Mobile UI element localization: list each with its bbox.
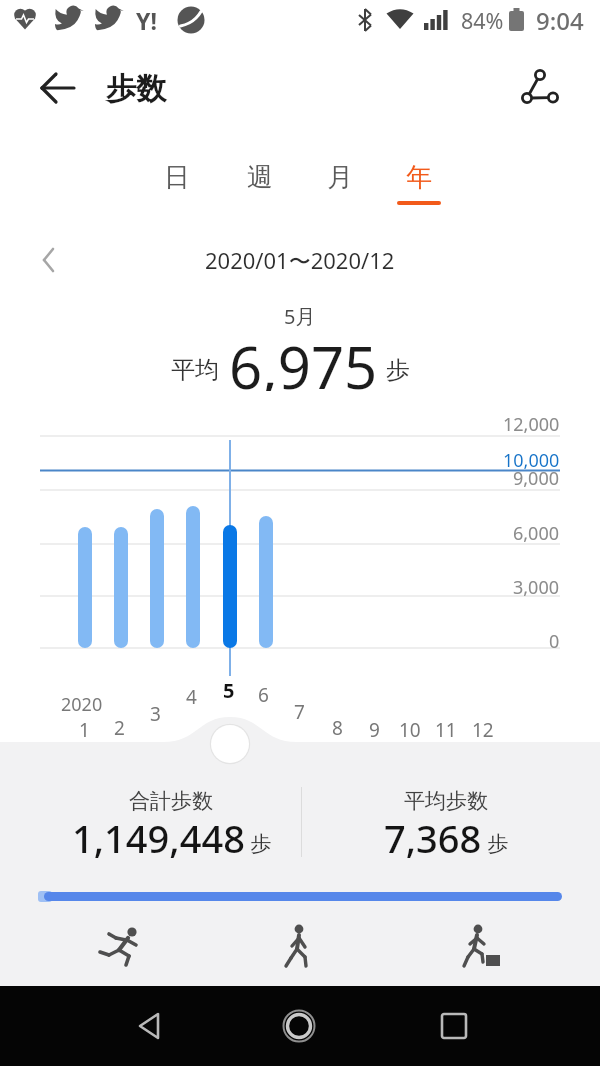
- staticText: 3: [150, 701, 161, 727]
- staticText: 9,000: [513, 466, 560, 491]
- staticText: 歩数: [106, 70, 166, 108]
- staticText: 9:04: [536, 4, 584, 37]
- staticText: 12,000: [503, 412, 560, 437]
- staticText: 7,368: [384, 812, 482, 862]
- staticText: 8: [332, 715, 343, 741]
- button[interactable]: [34, 70, 82, 110]
- staticText: 10: [399, 717, 421, 743]
- staticText: 週: [247, 161, 273, 194]
- button[interactable]: 年: [389, 155, 449, 199]
- staticText: 84%: [461, 6, 504, 35]
- button[interactable]: [96, 922, 146, 970]
- button[interactable]: [456, 922, 506, 970]
- button[interactable]: [424, 986, 484, 1066]
- staticText: 2: [114, 715, 125, 741]
- staticText: 4: [186, 684, 197, 710]
- staticText: 7: [294, 699, 305, 725]
- staticText: 10,000: [503, 448, 560, 473]
- staticText: 9: [369, 717, 380, 743]
- staticText: 6,000: [513, 521, 560, 546]
- staticText: 歩: [482, 829, 509, 858]
- staticText: 12: [472, 717, 494, 743]
- staticText: 1: [79, 717, 90, 743]
- button[interactable]: 月: [310, 155, 370, 199]
- staticText: 歩: [386, 355, 410, 385]
- staticText: 年: [406, 161, 432, 194]
- staticText: 平均: [171, 355, 219, 385]
- staticText: Y!: [136, 5, 157, 36]
- button[interactable]: 日: [147, 155, 207, 199]
- staticText: 5月: [284, 303, 316, 330]
- staticText: 平均歩数: [404, 788, 488, 814]
- button[interactable]: [274, 922, 324, 970]
- staticText: 月: [327, 161, 353, 194]
- staticText: 1,149,448: [72, 812, 245, 862]
- button[interactable]: [120, 986, 180, 1066]
- staticText: 日: [164, 161, 190, 194]
- staticText: 3,000: [513, 575, 560, 600]
- staticText: 2020: [61, 692, 103, 717]
- staticText: 6,975: [229, 327, 378, 391]
- staticText: 6: [258, 682, 269, 708]
- staticText: 0: [549, 629, 560, 654]
- button[interactable]: [514, 62, 566, 112]
- staticText: 合計歩数: [129, 788, 213, 814]
- staticText: 11: [435, 717, 457, 743]
- button[interactable]: [269, 986, 329, 1066]
- staticText: 歩: [245, 829, 272, 858]
- button[interactable]: [210, 725, 250, 765]
- staticText: 2020/01〜2020/12: [205, 245, 395, 275]
- staticText: 5: [223, 677, 235, 704]
- button[interactable]: 週: [230, 155, 290, 199]
- button[interactable]: [30, 242, 66, 278]
